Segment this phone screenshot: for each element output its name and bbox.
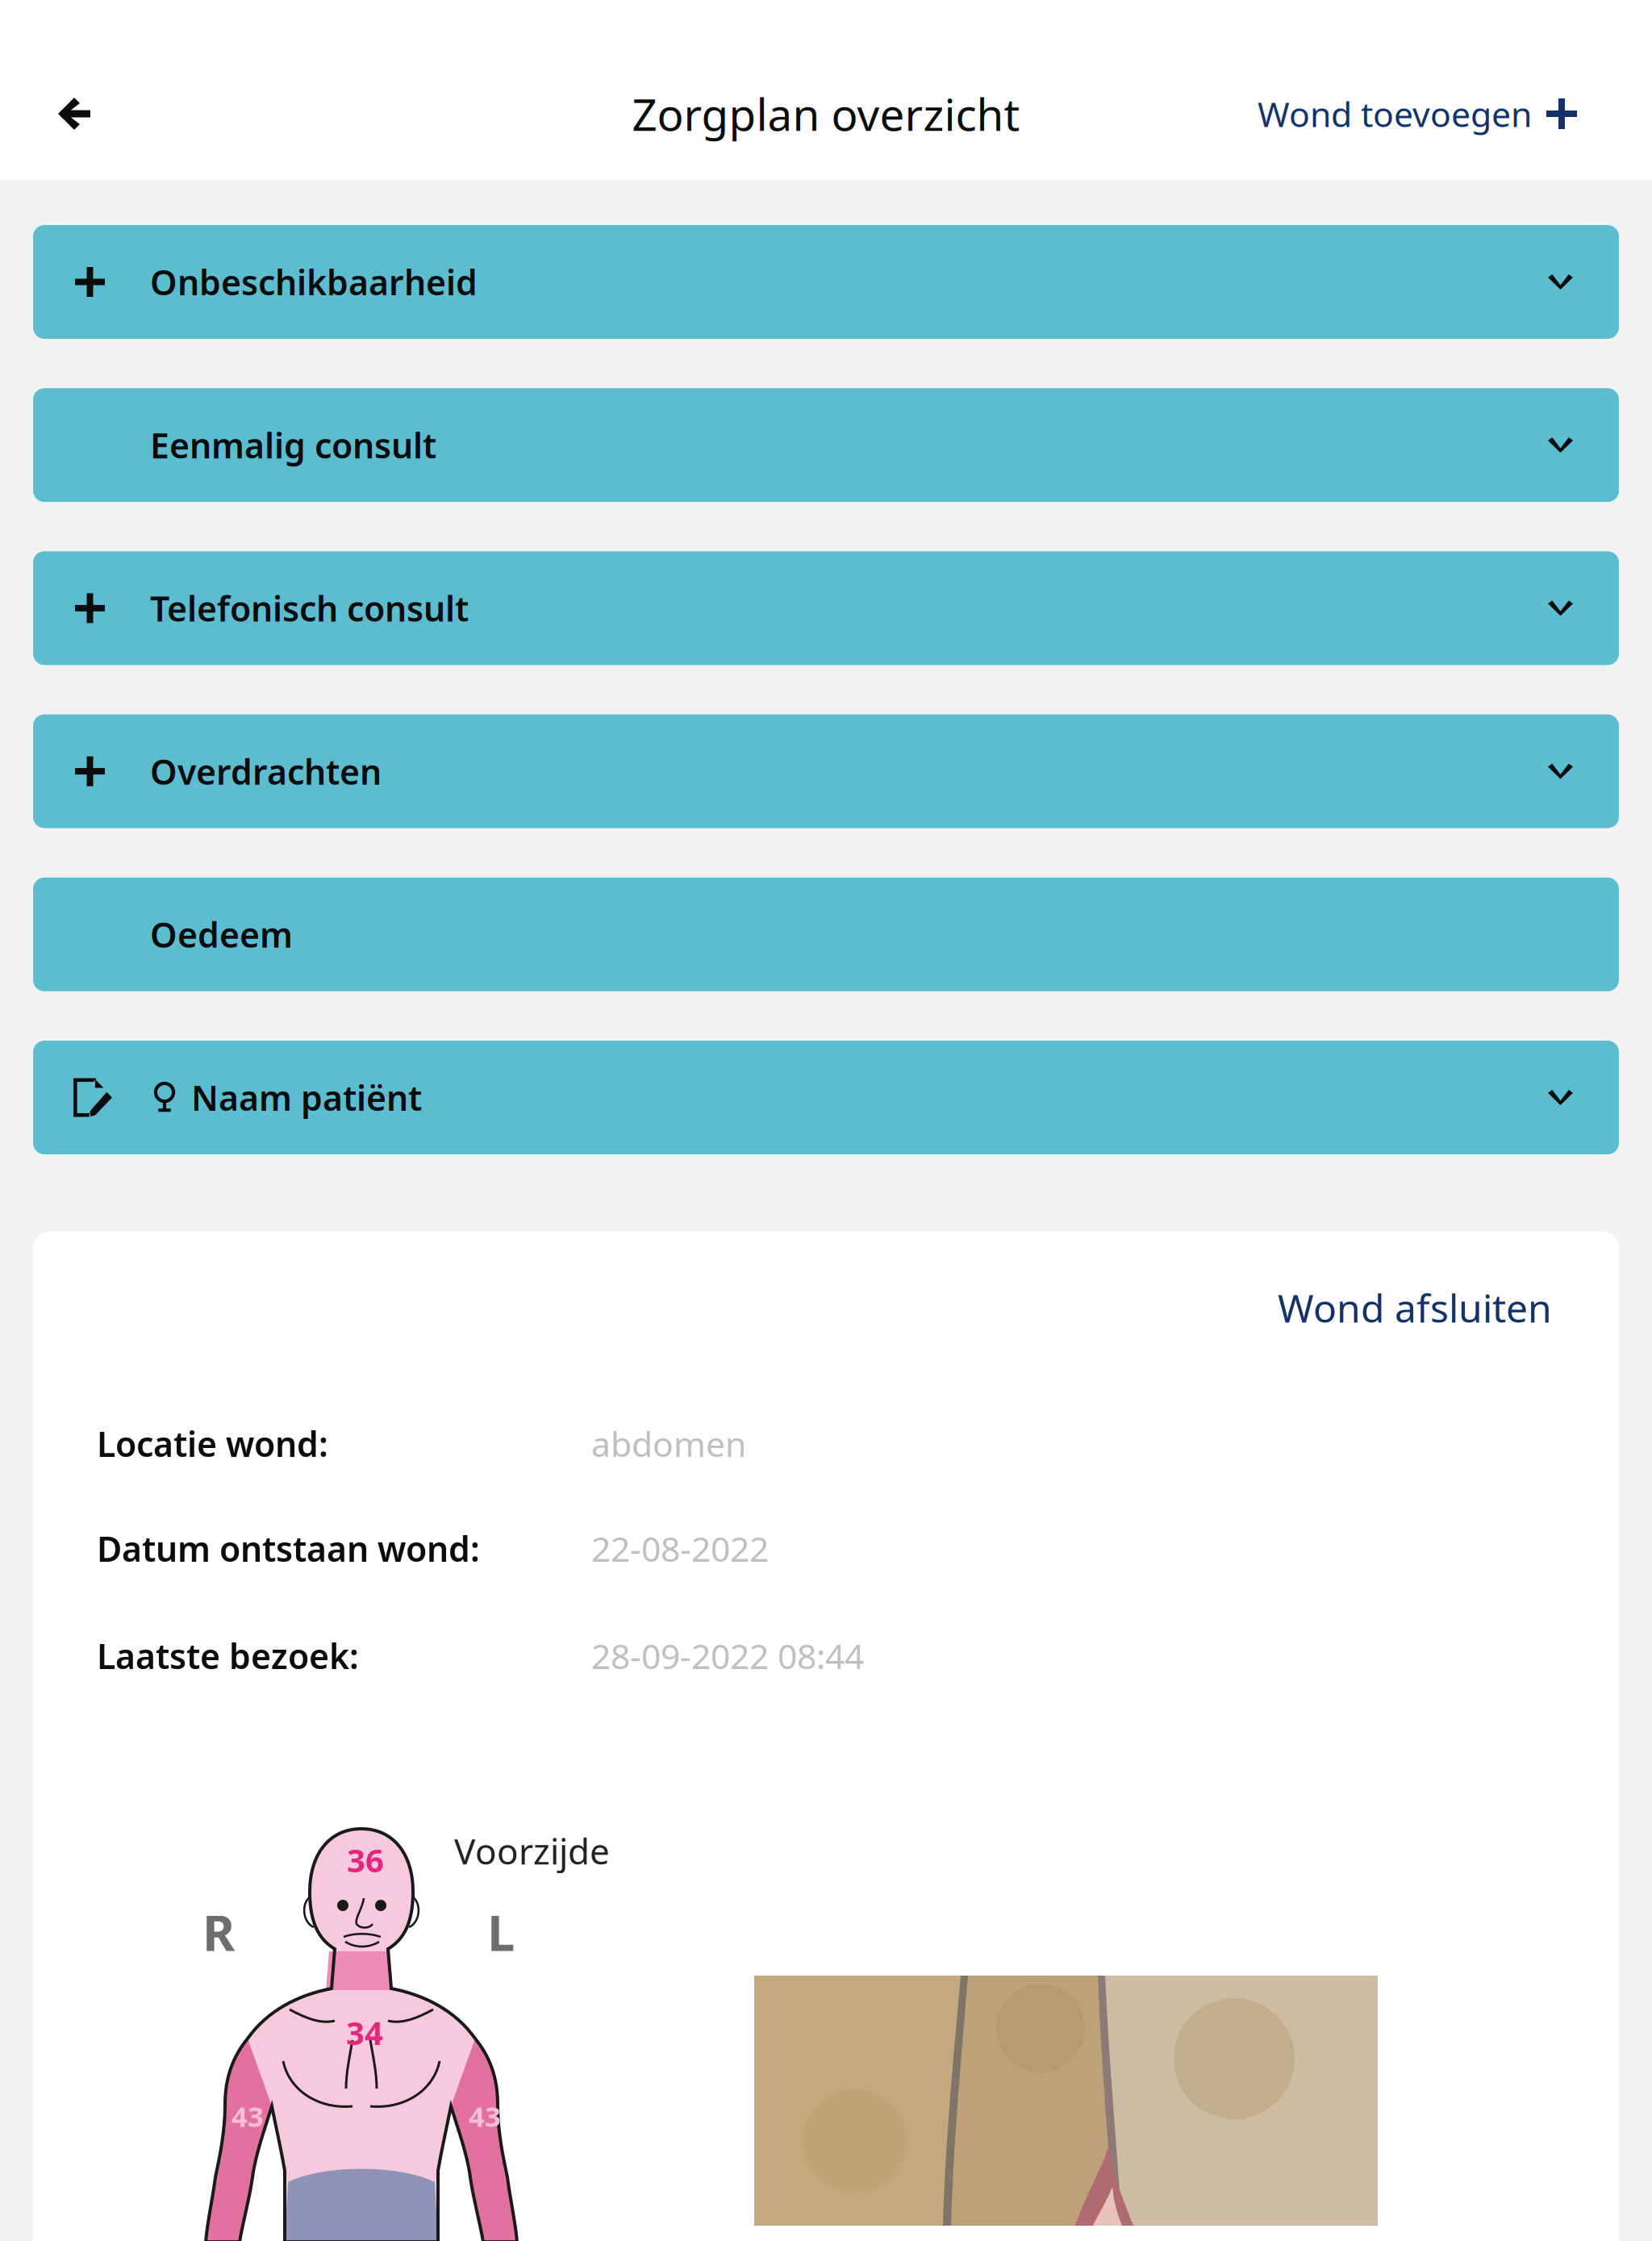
staticText: Oedeem xyxy=(150,912,293,957)
staticText: 34 xyxy=(346,2011,383,2054)
staticText: Telefonisch consult xyxy=(150,585,469,631)
staticText: Locatie wond: xyxy=(97,1421,328,1466)
button[interactable]: Wond afsluiten xyxy=(33,1231,1552,1333)
button[interactable]: Oedeem xyxy=(33,878,1619,991)
staticText: Eenmalig consult xyxy=(150,422,436,468)
staticText: Laatste bezoek: xyxy=(97,1633,359,1678)
button[interactable]: Wond toevoegen xyxy=(1258,65,1652,162)
button[interactable]: Back xyxy=(0,65,148,162)
staticText: R xyxy=(202,1899,235,1965)
button[interactable]: Overdrachten xyxy=(33,714,1619,828)
staticText: Voorzijde xyxy=(454,1827,610,1874)
button[interactable]: Naam patiënt xyxy=(33,1041,1619,1154)
staticText: L xyxy=(487,1899,515,1965)
staticText: 36 xyxy=(347,1838,384,1881)
staticText: 22-08-2022 xyxy=(591,1525,769,1571)
staticText: Onbeschikbaarheid xyxy=(150,259,478,305)
staticText: Wond afsluiten xyxy=(1278,1282,1552,1333)
button[interactable]: Eenmalig consult xyxy=(33,388,1619,502)
staticText: 43 xyxy=(469,2097,501,2135)
staticText: Naam patiënt xyxy=(191,1075,422,1120)
staticText: Zorgplan overzicht xyxy=(632,84,1020,143)
staticText: Datum ontstaan wond: xyxy=(97,1525,480,1571)
staticText: abdomen xyxy=(591,1421,746,1466)
staticText: 28-09-2022 08:44 xyxy=(591,1633,864,1678)
staticText: 43 xyxy=(232,2097,264,2135)
button[interactable]: Onbeschikbaarheid xyxy=(33,225,1619,339)
staticText: Overdrachten xyxy=(150,748,382,794)
staticText: Wond toevoegen xyxy=(1258,91,1532,137)
button[interactable]: Telefonisch consult xyxy=(33,551,1619,665)
